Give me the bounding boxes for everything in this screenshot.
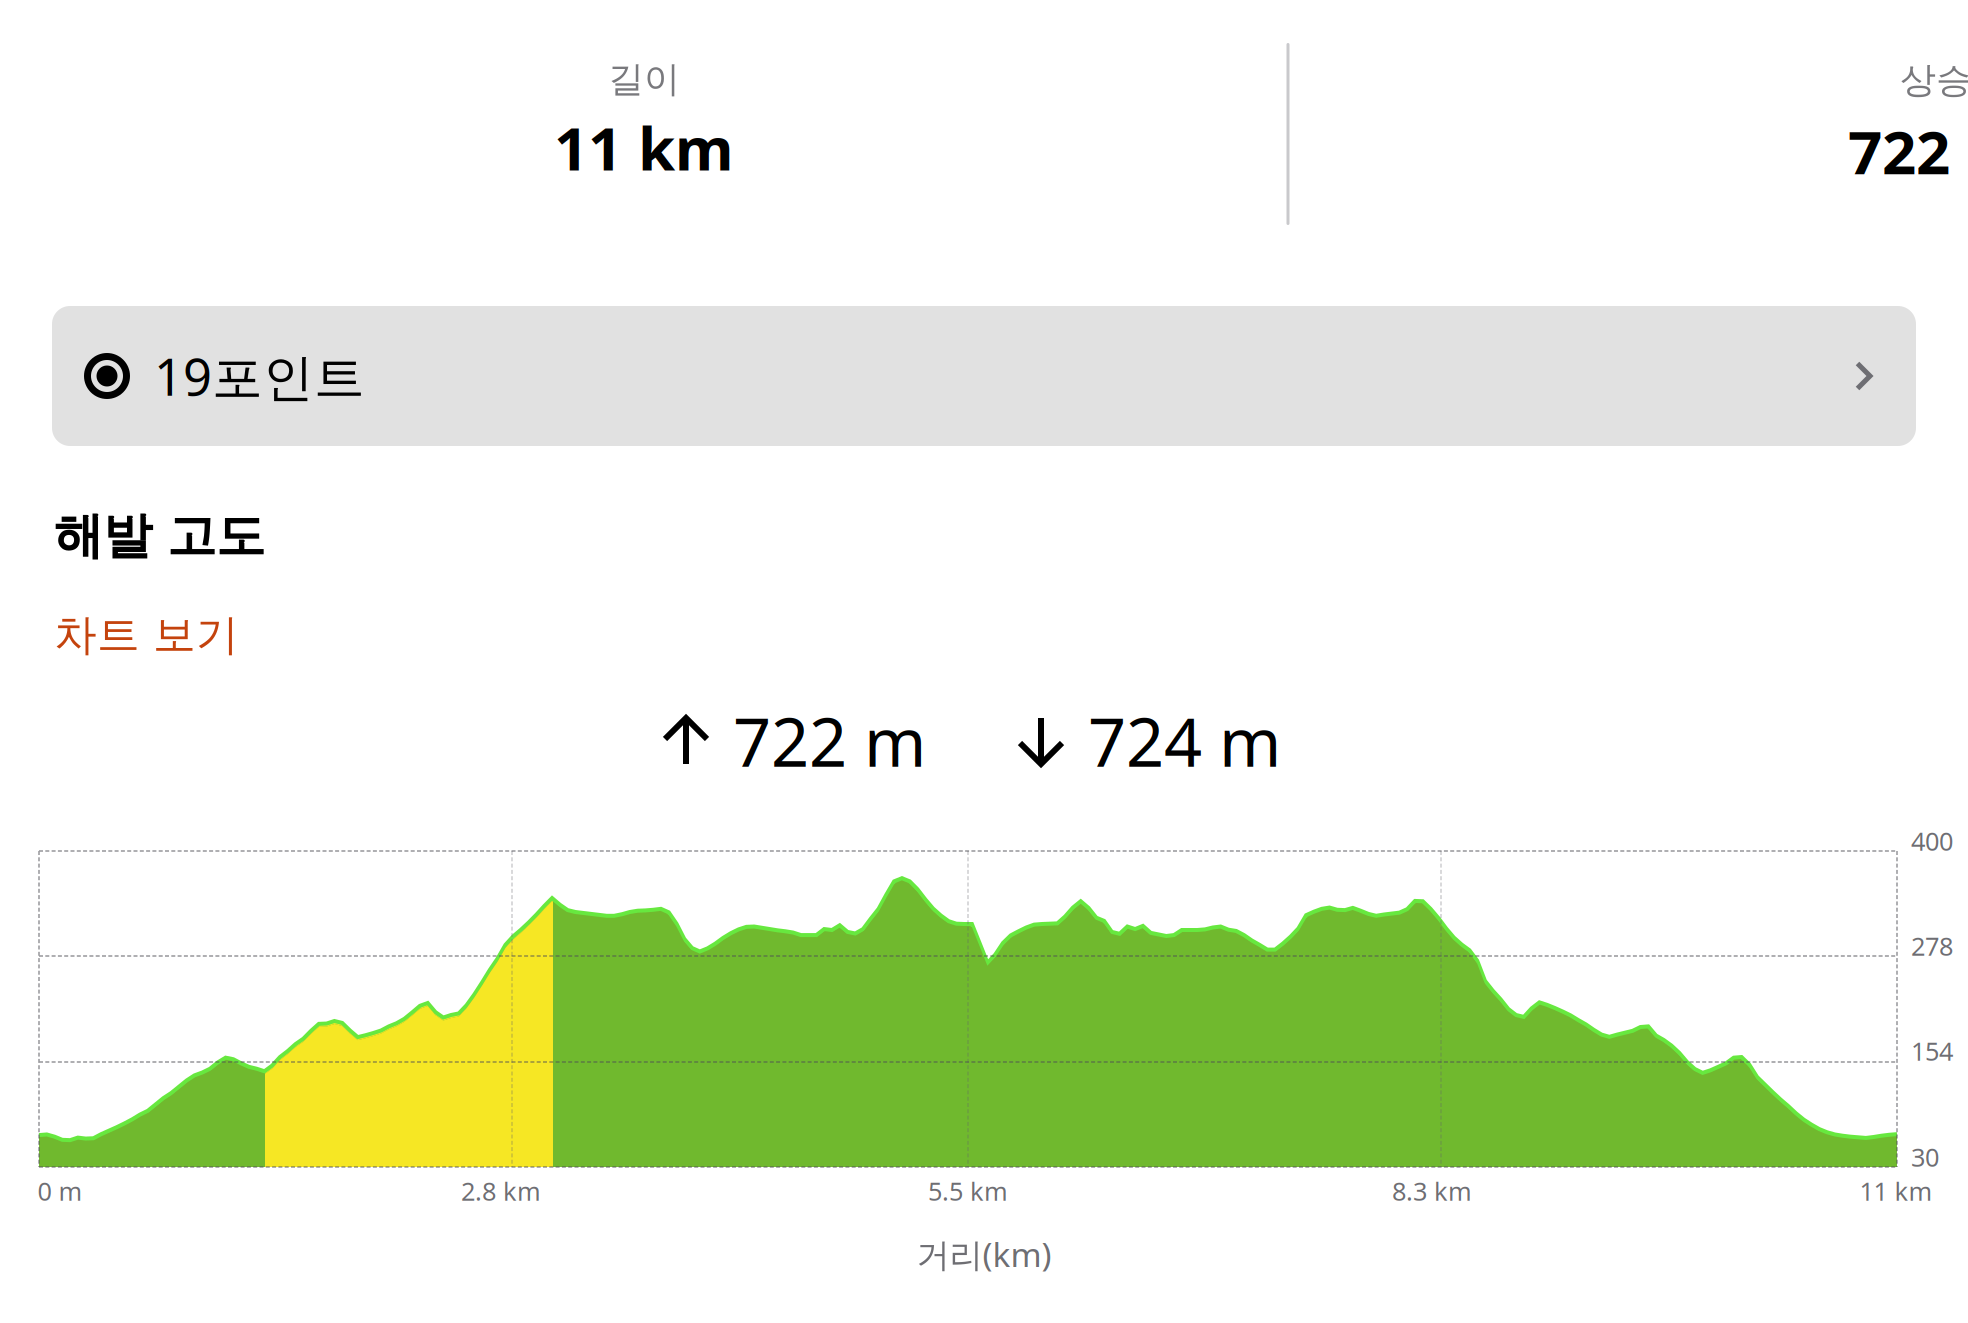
staticText: 278 [1911,929,1953,963]
staticText: 154 [1911,1034,1953,1068]
staticText: 722 [1848,111,1950,191]
button[interactable]: 차트 보기 [54,609,454,661]
staticText: 길이 [608,57,680,101]
staticText: 724 m [1088,697,1281,785]
staticText: 400 [1911,824,1953,858]
staticText: 2.8 km [461,1174,541,1208]
staticText: 차트 보기 [54,609,239,661]
staticText: 8.3 km [1392,1174,1472,1208]
staticText: 722 m [733,697,926,785]
staticText: 11 km [554,107,734,187]
staticText: 19포인트 [154,342,365,410]
staticText: 0 m [37,1174,82,1208]
staticText: 5.5 km [928,1174,1008,1208]
staticText: 11 km [1859,1174,1932,1208]
button[interactable]: 19포인트 [52,306,1916,446]
staticText: 30 [1911,1140,1939,1174]
staticText: 해발 고도 [54,506,265,566]
staticText: 상승 [1900,58,1968,102]
staticText: 거리(km) [916,1232,1051,1276]
